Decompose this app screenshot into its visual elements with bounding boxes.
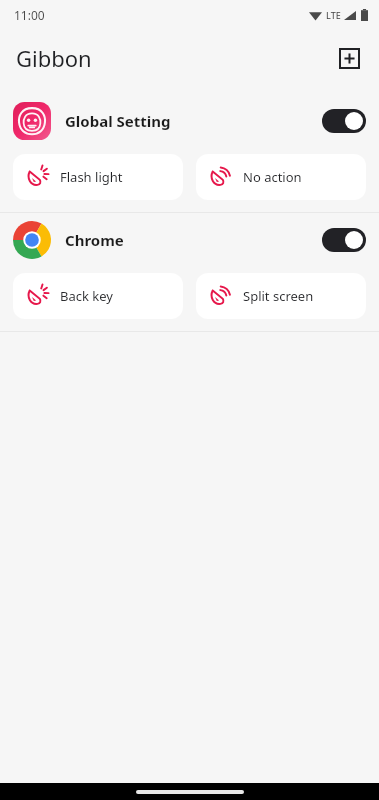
button[interactable]: Global Setting — [0, 94, 379, 148]
staticText: LTE — [326, 9, 341, 21]
button[interactable]: Add — [332, 41, 366, 75]
staticText: Flash light — [60, 168, 123, 186]
button[interactable]: Split screen — [196, 273, 366, 319]
staticText: Gibbon — [16, 43, 92, 73]
staticText: Split screen — [243, 287, 314, 305]
staticText: Chrome — [65, 230, 322, 250]
button[interactable]: Toggle — [322, 109, 366, 133]
button[interactable]: No action — [196, 154, 366, 200]
button[interactable]: Flash light — [13, 154, 183, 200]
staticText: No action — [243, 168, 302, 186]
staticText: 11:00 — [14, 7, 45, 23]
button[interactable]: Back key — [13, 273, 183, 319]
staticText: Global Setting — [65, 111, 322, 131]
button[interactable]: Chrome — [0, 213, 379, 267]
button[interactable]: Toggle — [322, 228, 366, 252]
staticText: Back key — [60, 287, 113, 305]
